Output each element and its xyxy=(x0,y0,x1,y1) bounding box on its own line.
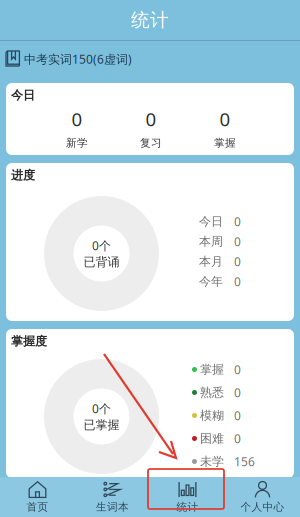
button[interactable]: 个人中心 xyxy=(225,477,300,517)
button[interactable]: 统计 xyxy=(0,0,300,40)
staticText: 首页 xyxy=(26,500,48,513)
staticText: 0 xyxy=(234,273,241,289)
button[interactable]: 生词本 xyxy=(75,477,150,517)
staticText: 0 xyxy=(234,361,241,377)
staticText: 个人中心 xyxy=(240,500,284,513)
staticText: 未学 xyxy=(200,454,224,469)
staticText: 0 xyxy=(234,253,241,269)
staticText: 已掌握 xyxy=(83,418,119,432)
staticText: 中考实词150(6虚词) xyxy=(24,51,132,67)
staticText: 156 xyxy=(234,453,255,469)
button[interactable]: 统计 xyxy=(150,477,225,517)
staticText: 掌握度 xyxy=(11,334,47,349)
staticText: 困难 xyxy=(200,431,224,446)
staticText: 熟悉 xyxy=(200,385,224,400)
staticText: 0 xyxy=(234,384,241,400)
staticText: 0 xyxy=(219,107,230,131)
staticText: 已背诵 xyxy=(83,255,119,269)
staticText: 0 xyxy=(234,233,241,249)
staticText: 统计 xyxy=(131,8,169,31)
staticText: 复习 xyxy=(140,136,162,149)
staticText: 掌握 xyxy=(200,362,224,377)
staticText: 生词本 xyxy=(96,500,129,513)
staticText: 本周 xyxy=(199,234,223,249)
staticText: 本月 xyxy=(199,254,223,269)
staticText: 新学 xyxy=(66,136,88,149)
staticText: 0个 xyxy=(92,401,111,417)
button[interactable]: 首页 xyxy=(0,477,75,517)
staticText: 今日 xyxy=(11,88,35,103)
staticText: 掌握 xyxy=(214,136,236,149)
staticText: 0 xyxy=(71,107,82,131)
staticText: 模糊 xyxy=(200,408,224,423)
staticText: 进度 xyxy=(11,168,35,183)
staticText: 今日 xyxy=(199,214,223,229)
staticText: 0 xyxy=(234,407,241,423)
staticText: 今年 xyxy=(199,274,223,289)
staticText: 0 xyxy=(234,430,241,446)
staticText: 0 xyxy=(234,213,241,229)
staticText: 0个 xyxy=(92,238,111,254)
staticText: 0 xyxy=(145,107,156,131)
staticText: 统计 xyxy=(176,500,198,513)
